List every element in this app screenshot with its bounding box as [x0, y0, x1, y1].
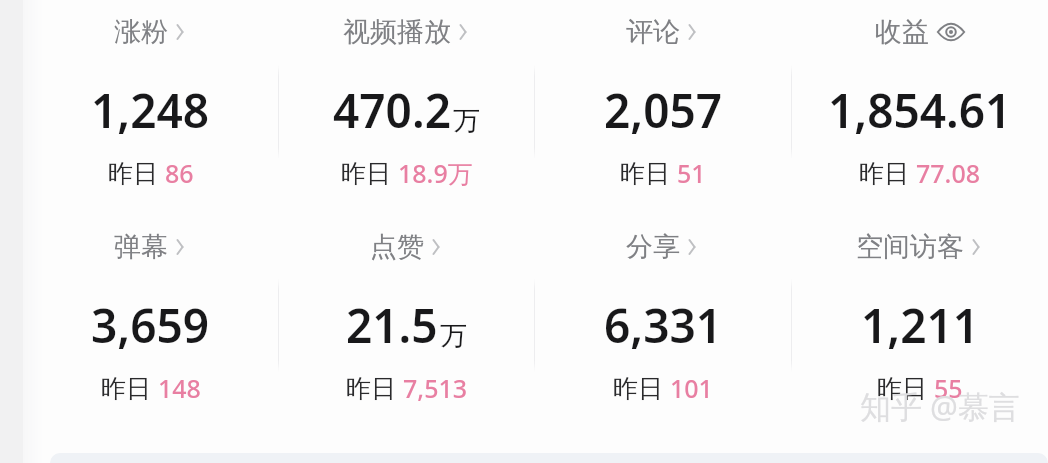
staticText: 昨日 — [101, 373, 151, 404]
staticText: 昨日 — [613, 373, 663, 404]
staticText: 55 — [934, 371, 963, 405]
staticText: 1,854.61 — [828, 79, 1012, 142]
staticText: 昨日 — [108, 158, 158, 189]
staticText: 148 — [158, 371, 201, 405]
staticText: 视频播放 — [343, 15, 451, 49]
staticText: 点赞 — [370, 230, 424, 264]
staticText: 昨日 — [341, 158, 391, 189]
button[interactable]: 弹幕 — [110, 228, 192, 266]
staticText: 评论 — [626, 15, 680, 49]
staticText: 1,211 — [861, 294, 980, 357]
button[interactable]: 点赞 — [279, 215, 534, 427]
button[interactable]: 评论 — [535, 0, 791, 215]
staticText: 涨粉 — [114, 15, 168, 49]
button[interactable]: 涨粉 — [23, 0, 278, 215]
staticText: 86 — [165, 156, 194, 190]
button[interactable]: 分享 — [535, 215, 791, 427]
button[interactable]: 涨粉 — [110, 13, 192, 51]
staticText: 分享 — [626, 230, 680, 264]
other: 分享 — [683, 234, 700, 260]
staticText: 470.2 — [333, 79, 451, 142]
other: 弹幕 — [171, 234, 188, 260]
other: 视频播放 — [454, 19, 471, 45]
staticText: 101 — [670, 371, 713, 405]
staticText: 弹幕 — [114, 230, 168, 264]
button[interactable]: 收益 — [792, 0, 1048, 215]
other: 涨粉 — [171, 19, 188, 45]
staticText: 万 — [440, 319, 467, 353]
staticText: 空间访客 — [856, 230, 964, 264]
button[interactable]: 空间访客 — [792, 215, 1048, 427]
staticText: 77.08 — [916, 156, 981, 190]
staticText: 收益 — [875, 15, 929, 49]
button[interactable]: 视频播放 — [339, 13, 475, 51]
other: 评论 — [683, 19, 700, 45]
staticText: 2,057 — [604, 79, 723, 142]
staticText: 7,513 — [403, 371, 468, 405]
button[interactable]: 弹幕 — [23, 215, 278, 427]
staticText: 3,659 — [91, 294, 210, 357]
button[interactable]: 点赞 — [366, 228, 448, 266]
staticText: 1,248 — [91, 79, 210, 142]
button[interactable]: 空间访客 — [852, 228, 988, 266]
staticText: 21.5 — [346, 294, 438, 357]
staticText: 18.9万 — [398, 156, 473, 190]
staticText: 知乎 @慕言 — [860, 385, 1020, 427]
staticText: 万 — [453, 104, 480, 138]
button[interactable]: 视频播放 — [279, 0, 534, 215]
staticText: 昨日 — [346, 373, 396, 404]
other: 空间访客 — [967, 234, 984, 260]
other: 显示收益 — [936, 20, 966, 44]
staticText: 昨日 — [877, 373, 927, 404]
staticText: 6,331 — [604, 294, 723, 357]
staticText: 昨日 — [859, 158, 909, 189]
button[interactable]: 评论 — [622, 13, 704, 51]
other: 点赞 — [427, 234, 444, 260]
staticText: 51 — [677, 156, 706, 190]
button[interactable]: 收益 — [871, 13, 970, 51]
button[interactable]: 分享 — [622, 228, 704, 266]
staticText: 昨日 — [620, 158, 670, 189]
